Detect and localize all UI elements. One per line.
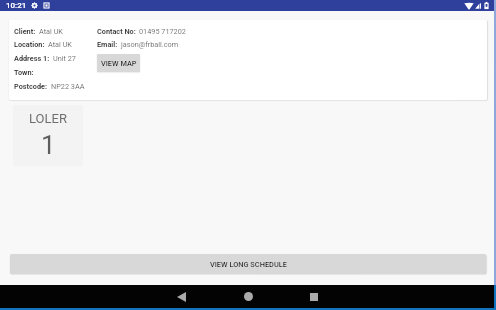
staticText: Contact No: bbox=[97, 27, 136, 36]
button[interactable]: LOLER bbox=[13, 105, 83, 166]
staticText: VIEW MAP bbox=[101, 59, 137, 68]
staticText: Address 1: bbox=[14, 54, 50, 63]
staticText: jason@frball.com bbox=[121, 40, 179, 49]
staticText: NP22 3AA bbox=[51, 82, 85, 91]
button[interactable]: Recent apps bbox=[298, 285, 330, 308]
staticText: Town: bbox=[14, 68, 34, 77]
staticText: Client: bbox=[14, 27, 36, 36]
staticText: Atal UK bbox=[39, 27, 63, 36]
staticText: 10:21 bbox=[6, 1, 27, 10]
staticText: LOLER bbox=[29, 111, 67, 126]
staticText: Location: bbox=[14, 40, 45, 49]
staticText: 01495 717202 bbox=[139, 27, 186, 36]
staticText: Postcode: bbox=[14, 82, 48, 91]
staticText: Unit 27 bbox=[53, 54, 76, 63]
staticText: Atal UK bbox=[48, 40, 72, 49]
button[interactable]: VIEW MAP bbox=[97, 54, 140, 72]
button[interactable]: Back bbox=[165, 285, 197, 308]
staticText: 1 bbox=[41, 130, 56, 160]
button[interactable]: VIEW LONG SCHEDULE bbox=[10, 254, 486, 274]
button[interactable]: Home bbox=[232, 285, 264, 308]
staticText: Email: bbox=[97, 40, 118, 49]
staticText: VIEW LONG SCHEDULE bbox=[210, 260, 287, 269]
